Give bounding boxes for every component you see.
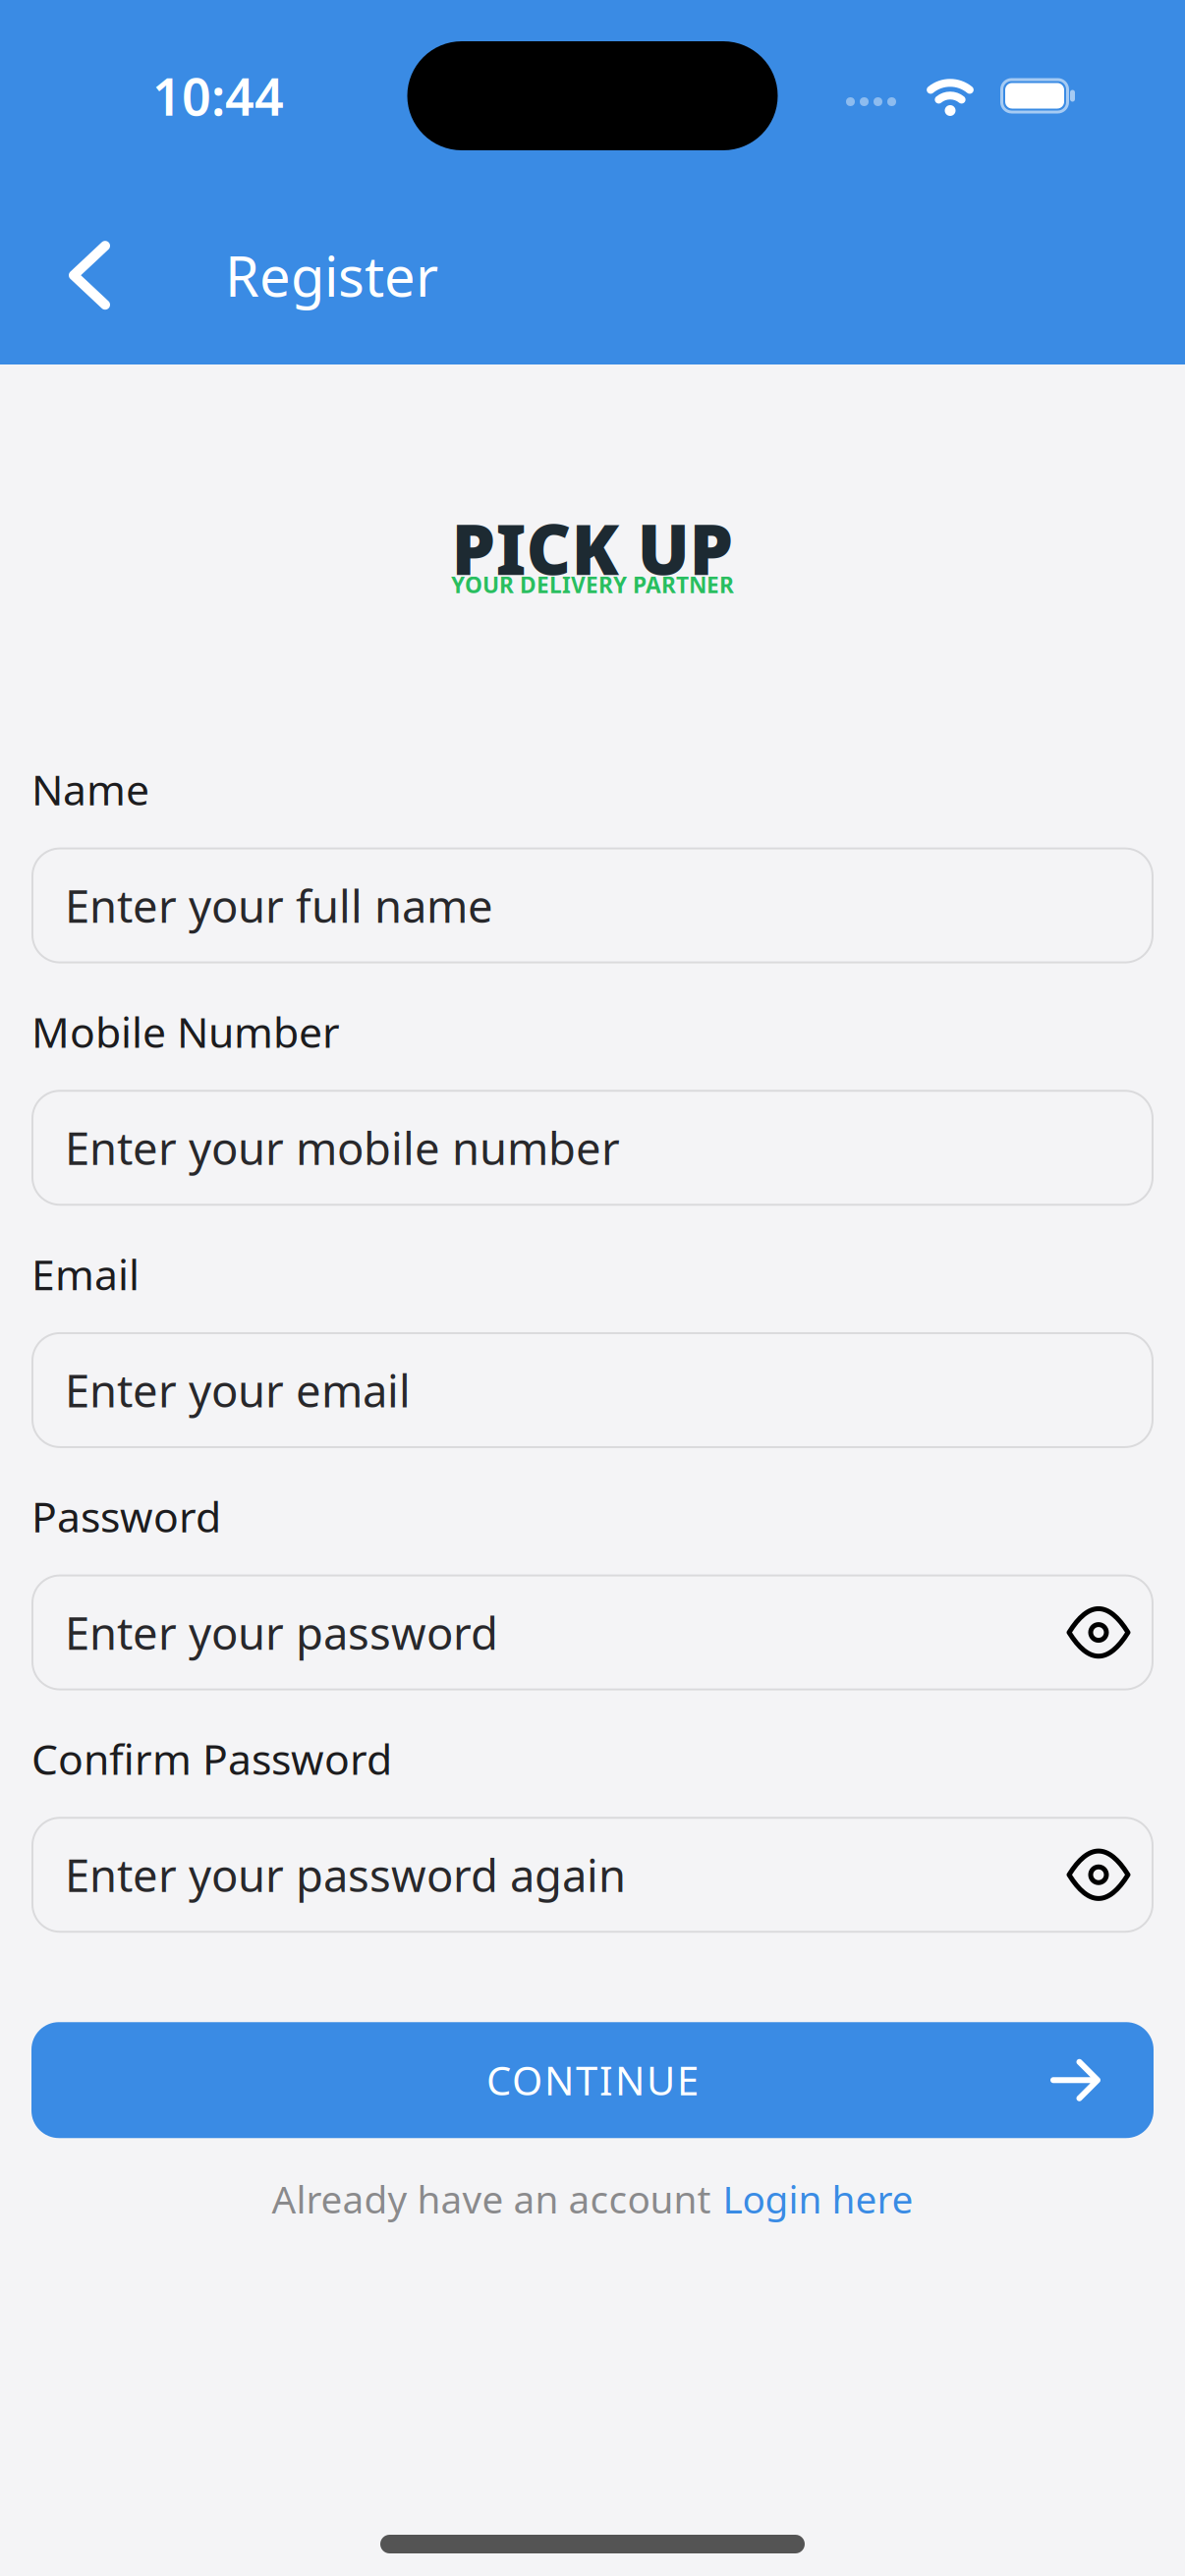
staticText: Enter your password again — [65, 1845, 626, 1904]
staticText: Login here — [723, 2173, 913, 2224]
button[interactable]: Enter your email — [31, 1332, 1154, 1448]
staticText: Mobile Number — [31, 1004, 340, 1059]
staticText: Register — [225, 239, 438, 312]
button[interactable]: Login here — [723, 2173, 913, 2224]
staticText: Name — [31, 761, 149, 817]
staticText: CONTINUE — [486, 2054, 699, 2106]
button[interactable]: Enter your mobile number — [31, 1090, 1154, 1206]
button[interactable]: Enter your password again — [31, 1817, 1154, 1933]
staticText: Enter your password — [65, 1603, 498, 1662]
staticText: Enter your email — [65, 1361, 411, 1420]
staticText: 10:44 — [152, 62, 284, 130]
staticText: Enter your full name — [65, 876, 493, 935]
button[interactable]: Show password — [1069, 1610, 1128, 1655]
button[interactable]: Enter your password — [31, 1574, 1154, 1690]
button[interactable]: Enter your full name — [31, 847, 1154, 963]
staticText: YOUR DELIVERY PARTNER — [451, 570, 734, 599]
staticText: Confirm Password — [31, 1731, 392, 1786]
button[interactable]: CONTINUE — [31, 2022, 1154, 2138]
staticText: Email — [31, 1246, 140, 1302]
staticText: Enter your mobile number — [65, 1118, 620, 1177]
staticText: Already have an account — [272, 2173, 711, 2224]
button[interactable]: Show password — [1069, 1852, 1128, 1897]
staticText: Password — [31, 1488, 221, 1544]
button[interactable]: Back — [0, 246, 105, 305]
staticText: PICK UP — [451, 502, 734, 594]
